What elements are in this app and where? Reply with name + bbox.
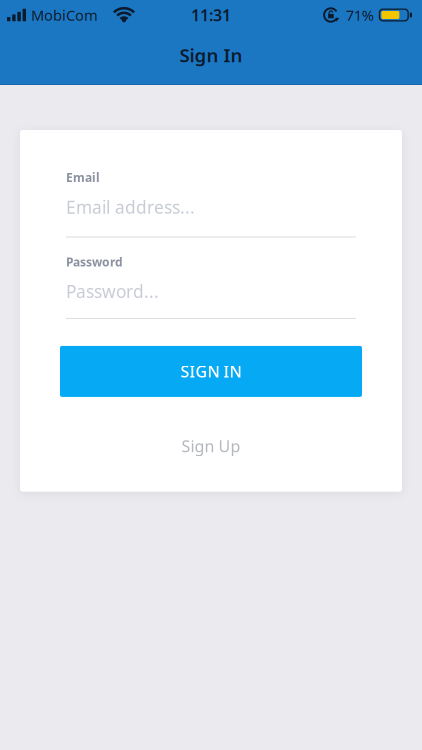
staticText: Password xyxy=(66,254,123,270)
button[interactable]: Sign Up xyxy=(181,435,240,457)
button[interactable]: Password... xyxy=(66,270,356,319)
staticText: MobiCom xyxy=(31,5,98,25)
staticText: Email address... xyxy=(66,195,195,218)
staticText: Sign Up xyxy=(181,435,240,457)
staticText: Password... xyxy=(66,280,159,303)
staticText: 11:31 xyxy=(191,4,231,26)
staticText: Sign In xyxy=(179,43,242,67)
button[interactable]: SIGN IN xyxy=(60,346,362,397)
staticText: 71% xyxy=(346,5,374,25)
staticText: SIGN IN xyxy=(180,361,241,382)
staticText: Email xyxy=(66,169,100,185)
button[interactable]: Email address... xyxy=(66,185,356,237)
